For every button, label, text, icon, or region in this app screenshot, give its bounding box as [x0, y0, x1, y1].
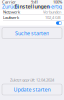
staticText: Suche starten [15, 30, 49, 37]
staticText: Einstellungen [14, 3, 49, 10]
staticText: 9:41 [31, 0, 38, 5]
staticText: Update starten [13, 86, 50, 93]
button[interactable]: Zurück [1, 3, 20, 10]
staticText: Verbunden [43, 9, 61, 15]
staticText: Netzwerk [3, 9, 20, 15]
staticText: 102,4 GB [45, 15, 61, 20]
button[interactable]: Automatische Updates [56, 21, 62, 25]
staticText: Carrier [2, 0, 16, 5]
staticText: Zuletzt geprüft: 12.04.2024 [10, 77, 54, 82]
staticText: Laufwerk [3, 15, 19, 20]
staticText: Zurück [2, 3, 19, 10]
staticText: Fertig [48, 3, 62, 10]
button[interactable]: Suche starten [2, 28, 62, 39]
staticText: 100% [53, 0, 62, 5]
button[interactable]: Fertig [47, 3, 63, 10]
button[interactable]: Update starten [2, 84, 62, 95]
